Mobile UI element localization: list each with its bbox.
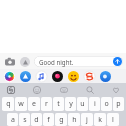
button[interactable]: w — [15, 97, 27, 111]
button[interactable]: Memoji — [67, 70, 79, 82]
button[interactable]: Memoji keyboard — [58, 84, 69, 95]
button[interactable]: o — [101, 97, 112, 111]
staticText: g — [59, 115, 64, 125]
staticText: u — [80, 99, 85, 109]
button[interactable]: Camera — [3, 55, 16, 68]
staticText: a — [11, 115, 15, 125]
button[interactable]: h — [68, 113, 80, 126]
staticText: o — [104, 99, 109, 109]
button[interactable]: More — [99, 70, 111, 82]
button[interactable]: q — [2, 97, 14, 111]
staticText: r — [45, 99, 48, 109]
staticText: w — [18, 99, 24, 109]
button[interactable]: g — [55, 113, 67, 126]
button[interactable]: u — [77, 97, 88, 111]
button[interactable]: Photos — [3, 70, 15, 82]
staticText: d — [34, 115, 39, 125]
staticText: j — [86, 115, 88, 125]
button[interactable]: Digital Touch — [51, 70, 63, 82]
button[interactable]: y — [65, 97, 76, 111]
button[interactable]: App Store — [19, 70, 31, 82]
button[interactable]: s — [19, 113, 30, 126]
button[interactable]: Emoji — [31, 84, 42, 95]
staticText: k — [98, 115, 102, 125]
button[interactable]: Stickers — [83, 70, 95, 82]
staticText: t — [57, 99, 60, 109]
button[interactable]: Apps — [18, 55, 31, 68]
staticText: h — [72, 115, 77, 125]
staticText: p — [116, 99, 121, 109]
button[interactable]: i — [89, 97, 100, 111]
staticText: f — [47, 115, 50, 125]
button[interactable]: d — [31, 113, 42, 126]
button[interactable]: Search — [84, 84, 95, 95]
button[interactable]: Good night. — [34, 56, 123, 67]
staticText: e — [32, 99, 36, 109]
button[interactable]: p — [113, 97, 124, 111]
staticText: s — [23, 115, 27, 125]
staticText: i — [94, 99, 96, 109]
staticText: Good night. — [39, 58, 74, 66]
button[interactable]: Music — [35, 70, 47, 82]
staticText: y — [69, 99, 73, 109]
staticText: q — [6, 99, 11, 109]
staticText: l — [112, 115, 114, 125]
button[interactable]: e — [28, 97, 40, 111]
button[interactable]: l — [107, 113, 119, 126]
button[interactable]: Stickers — [5, 84, 16, 95]
button[interactable]: t — [53, 97, 64, 111]
button[interactable]: j — [81, 113, 93, 126]
button[interactable]: k — [94, 113, 106, 126]
button[interactable]: Heart — [110, 84, 121, 95]
button[interactable]: a — [7, 113, 18, 126]
button[interactable]: Send — [113, 57, 122, 66]
button[interactable]: r — [41, 97, 52, 111]
button[interactable]: f — [43, 113, 54, 126]
